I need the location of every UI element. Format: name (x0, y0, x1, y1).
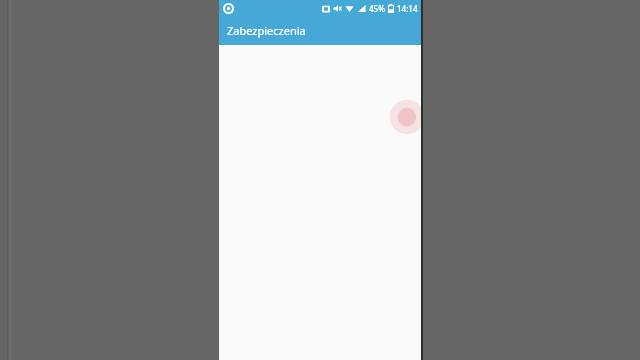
staticText: 45% (369, 3, 385, 14)
button[interactable]: Zabezpieczenia (219, 17, 421, 45)
staticText: Zabezpieczenia (227, 23, 306, 38)
staticText: 14:14 (397, 3, 418, 14)
